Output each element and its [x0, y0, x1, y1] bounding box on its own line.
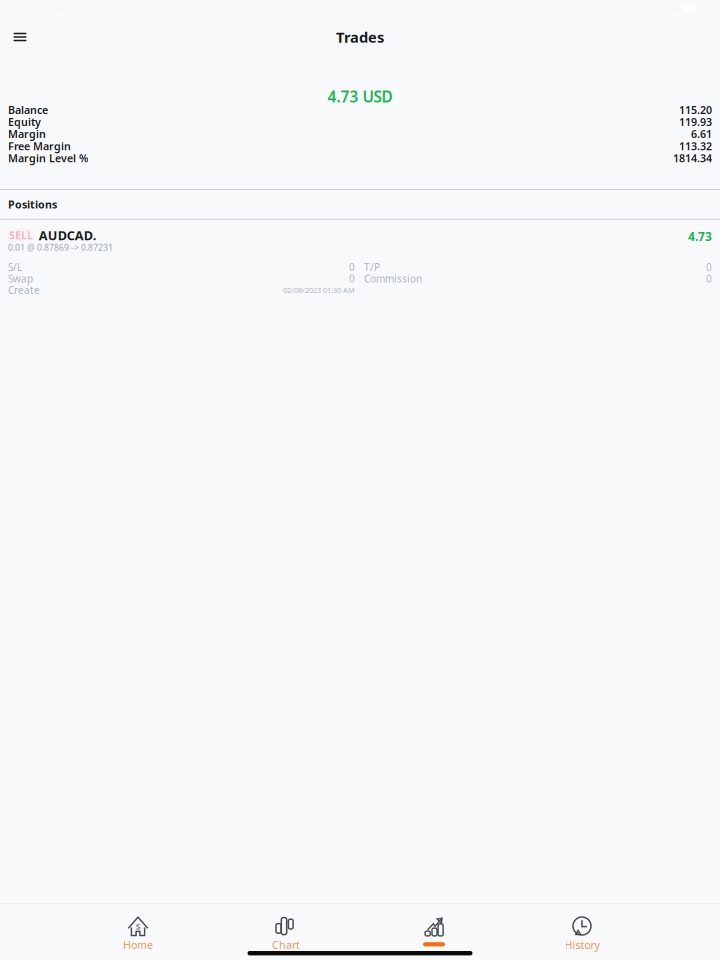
staticText: Equity	[8, 115, 41, 129]
staticText: 113.32	[679, 139, 712, 153]
staticText: Positions	[8, 197, 57, 212]
button[interactable]: SELL	[0, 220, 720, 296]
button[interactable]	[397, 916, 471, 948]
staticText: 4.73 USD	[327, 86, 392, 107]
button[interactable]: History	[545, 916, 619, 948]
staticText: 4.73	[688, 228, 712, 244]
staticText: Swap	[8, 272, 33, 285]
staticText: Home	[123, 938, 153, 952]
staticText: 0	[349, 260, 355, 274]
staticText: 0	[706, 260, 712, 274]
staticText: S/L	[8, 260, 22, 274]
staticText: Margin Level %	[8, 151, 88, 165]
staticText: 0	[706, 272, 712, 285]
staticText: T/P	[364, 260, 380, 274]
staticText: SELL	[9, 228, 33, 242]
staticText: 0.01 @ 0.87869 -> 0.87231	[8, 241, 113, 253]
button[interactable]: Chart	[249, 916, 323, 948]
staticText: Chart	[272, 938, 300, 952]
staticText: 02/08/2023 01:30 AM	[283, 285, 355, 295]
staticText: Commission	[364, 272, 422, 285]
staticText: Margin	[8, 127, 46, 141]
button[interactable]: $	[101, 916, 175, 948]
staticText: 1814.34	[673, 151, 712, 165]
staticText: 0	[349, 272, 355, 285]
staticText: History	[564, 938, 599, 952]
staticText: 119.93	[679, 115, 712, 129]
staticText: Balance	[8, 103, 48, 117]
staticText: $	[135, 921, 140, 933]
staticText: AUDCAD.	[39, 227, 97, 244]
staticText: 115.20	[679, 103, 712, 117]
staticText: Free Margin	[8, 139, 71, 153]
staticText: Create	[8, 283, 40, 297]
staticText: Trades	[336, 27, 384, 47]
button[interactable]: Menu	[7, 24, 33, 50]
staticText: 6.61	[691, 127, 712, 141]
